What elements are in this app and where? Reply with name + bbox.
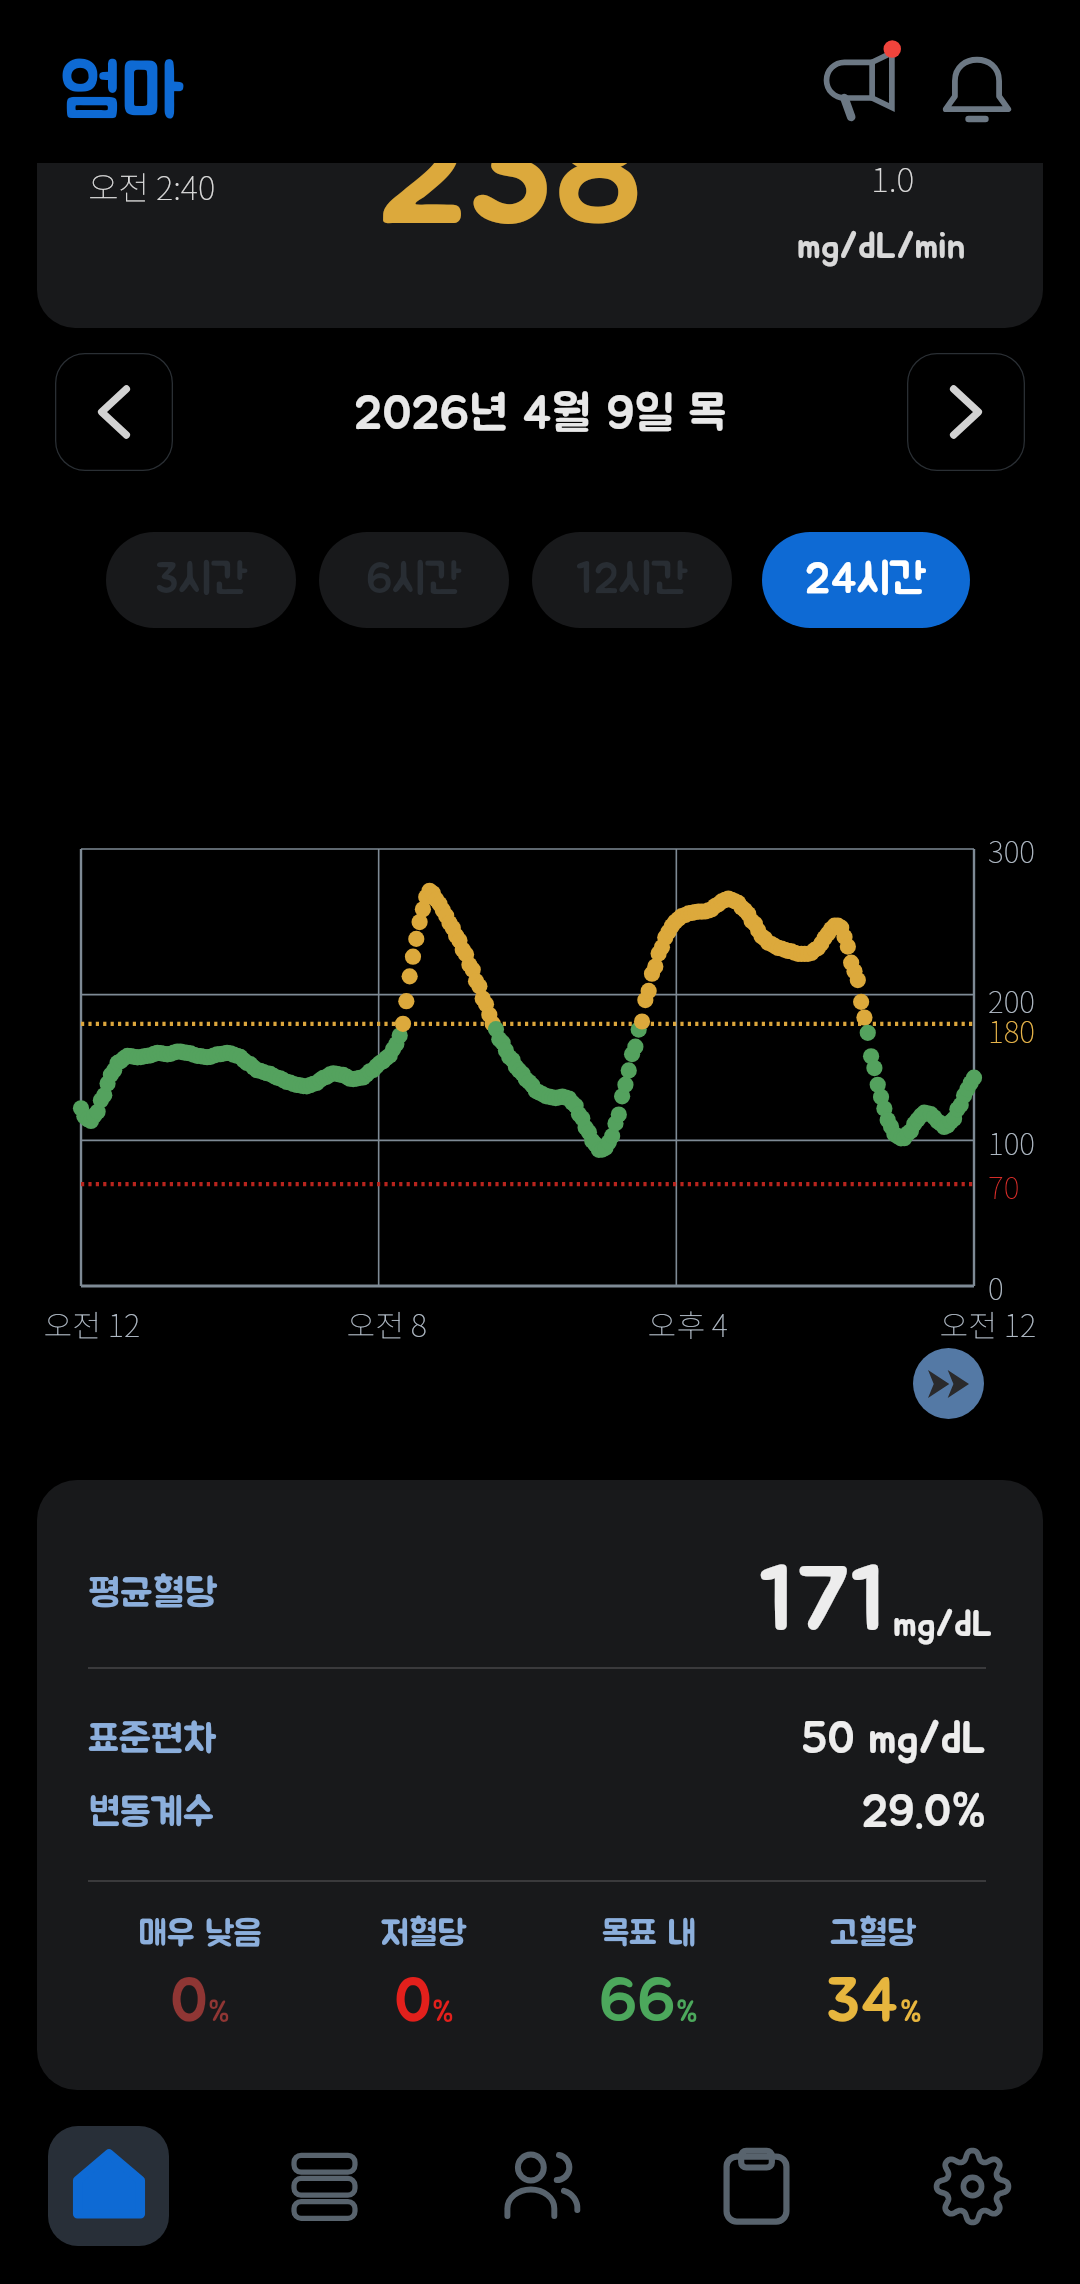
staticText: 고혈당: [830, 1917, 917, 1952]
staticText: %: [900, 1999, 922, 2027]
button[interactable]: 3시간: [106, 532, 296, 628]
staticText: 300: [988, 828, 1035, 871]
staticText: 6시간: [366, 559, 462, 602]
button[interactable]: Announcements: [803, 19, 923, 139]
staticText: 변동계수: [88, 1794, 214, 1833]
staticText: 평균혈당: [88, 1575, 218, 1614]
staticText: 200: [988, 978, 1035, 1021]
staticText: 저혈당: [381, 1917, 467, 1952]
staticText: 0: [394, 1971, 432, 2033]
staticText: 66: [599, 1971, 676, 2033]
staticText: mg/dL/min: [797, 228, 966, 266]
button[interactable]: Notifications: [917, 25, 1037, 145]
staticText: 0: [170, 1971, 208, 2033]
staticText: 0: [988, 1265, 1004, 1308]
button[interactable]: 고혈당: [761, 1917, 986, 2033]
button[interactable]: Settings: [864, 2094, 1080, 2254]
staticText: 오전 8: [347, 1301, 428, 1341]
button[interactable]: Reports: [648, 2094, 864, 2254]
staticText: 오전 2:40: [88, 163, 216, 210]
staticText: 238: [376, 163, 644, 255]
button[interactable]: 오전 2:40: [37, 163, 1043, 328]
staticText: 180: [988, 1008, 1035, 1051]
staticText: 24시간: [805, 559, 927, 602]
button[interactable]: 목표 내: [536, 1917, 761, 2033]
staticText: %: [208, 1999, 230, 2027]
staticText: 100: [988, 1120, 1035, 1163]
staticText: 1.0: [871, 163, 915, 202]
staticText: 오전 12: [44, 1301, 141, 1341]
staticText: mg/dL: [893, 1606, 993, 1644]
button[interactable]: Home: [0, 2094, 216, 2254]
staticText: 2026년 4월 9일 목: [0, 391, 1080, 439]
button[interactable]: Next day: [907, 353, 1025, 471]
staticText: 표준편차: [88, 1721, 217, 1760]
staticText: %: [432, 1999, 454, 2027]
button[interactable]: 24시간: [762, 532, 970, 628]
button[interactable]: Jump to latest: [913, 1348, 984, 1419]
staticText: 오후 4: [648, 1301, 729, 1341]
button[interactable]: 매우 낮음: [88, 1917, 312, 2033]
button[interactable]: Previous day: [55, 353, 173, 471]
staticText: 171: [759, 1557, 888, 1647]
staticText: 29.0%: [37, 1790, 986, 1835]
staticText: 목표 내: [602, 1917, 696, 1952]
staticText: 50 mg/dL: [37, 1717, 986, 1762]
staticText: 매우 낮음: [138, 1917, 262, 1952]
staticText: 엄마: [60, 57, 184, 131]
button[interactable]: 엄마: [40, 32, 290, 156]
button[interactable]: 저혈당: [312, 1917, 536, 2033]
button[interactable]: Logs: [216, 2094, 432, 2254]
staticText: %: [676, 1999, 698, 2027]
staticText: 오전 12: [940, 1301, 1037, 1341]
button[interactable]: 6시간: [319, 532, 509, 628]
staticText: 3시간: [155, 559, 248, 602]
button[interactable]: 12시간: [532, 532, 732, 628]
button[interactable]: 평균혈당: [37, 1480, 1043, 2090]
staticText: 34: [826, 1971, 900, 2033]
button[interactable]: Friends: [432, 2094, 648, 2254]
staticText: 12시간: [576, 559, 688, 602]
staticText: 70: [988, 1164, 1020, 1207]
